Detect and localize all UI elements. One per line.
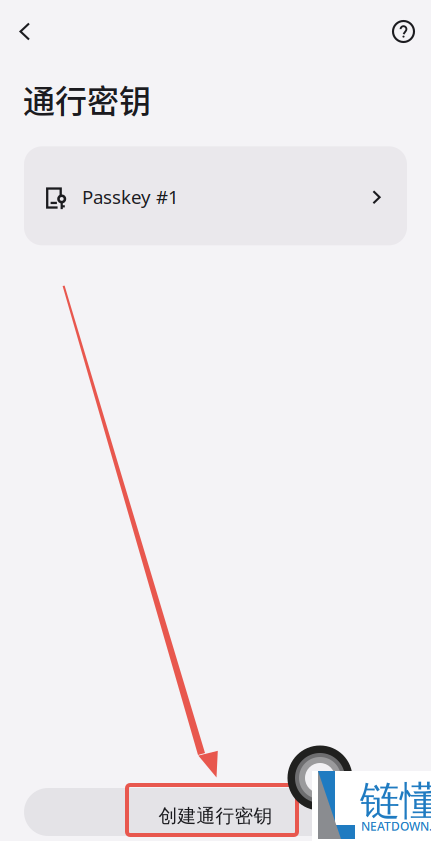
staticText: 链懂 <box>360 776 431 825</box>
staticText: Passkey #1 <box>82 184 179 209</box>
staticText: NEATDOWN.COM <box>361 818 431 834</box>
button[interactable]: 创建通行密钥 <box>24 788 407 836</box>
staticText: 创建通行密钥 <box>158 804 272 827</box>
button[interactable]: Back <box>0 10 44 53</box>
staticText: 通行密钥 <box>23 76 151 122</box>
button[interactable]: Help <box>379 9 431 54</box>
button[interactable]: Passkey #1 <box>24 146 407 245</box>
